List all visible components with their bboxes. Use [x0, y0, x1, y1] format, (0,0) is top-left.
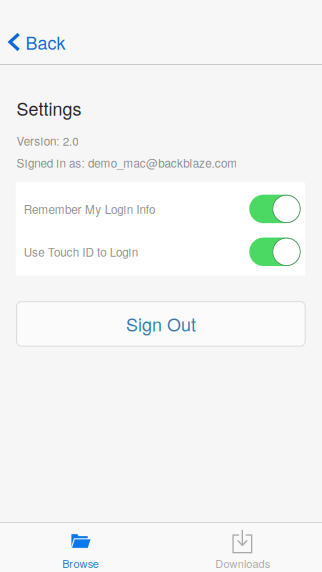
- button[interactable]: Use Touch ID to Login: [16, 231, 305, 273]
- button[interactable]: Downloads: [161, 523, 322, 572]
- button[interactable]: Remember My Login Info: [16, 188, 305, 230]
- staticText: Version: 2.0: [16, 132, 78, 149]
- staticText: Use Touch ID to Login: [24, 243, 138, 260]
- staticText: Back: [25, 29, 65, 55]
- staticText: Remember My Login Info: [24, 200, 155, 217]
- staticText: Signed in as: demo_mac@backblaze.com: [16, 154, 237, 171]
- staticText: Browse: [62, 556, 99, 571]
- staticText: Sign Out: [126, 311, 196, 337]
- button[interactable]: Sign Out: [17, 302, 305, 346]
- staticText: Settings: [16, 95, 81, 121]
- staticText: Downloads: [215, 555, 270, 571]
- button[interactable]: Back: [0, 20, 75, 64]
- button[interactable]: Browse: [0, 523, 161, 572]
